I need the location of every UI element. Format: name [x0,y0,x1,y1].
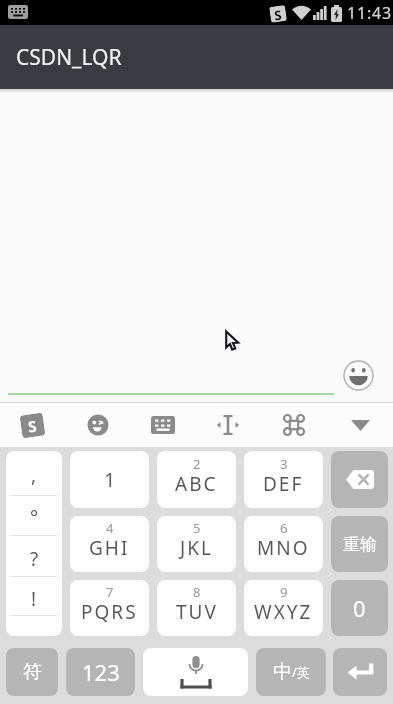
staticText: GHI [89,535,130,561]
button[interactable]: 8 [157,580,236,636]
staticText: S [273,5,283,22]
staticText: 3 [280,455,288,473]
staticText: CSDN_LQR [16,43,122,72]
button[interactable]: 1 [70,451,149,508]
staticText: 5 [193,519,201,537]
staticText: 123 [82,657,120,687]
staticText: PQRS [81,599,138,625]
staticText: /英 [292,663,310,681]
button[interactable]: 2 [157,451,236,508]
button[interactable]: ! [6,577,62,616]
staticText: 8 [193,583,201,601]
staticText: S [27,415,38,437]
staticText: , [31,462,37,488]
button[interactable] [261,403,327,447]
staticText: JKL [180,535,213,561]
button[interactable]: 123 [66,648,135,696]
button[interactable]: 0 [331,580,388,636]
staticText: 重输 [343,534,377,555]
button[interactable]: 7 [70,580,149,636]
button[interactable]: , [6,451,62,496]
button[interactable]: 4 [70,516,149,572]
staticText: 1 [104,466,116,493]
button[interactable]: 3 [244,451,323,508]
button[interactable] [195,403,261,447]
button[interactable]: , [6,451,62,636]
button[interactable]: 9 [244,580,323,636]
staticText: DEF [263,471,304,497]
button[interactable]: ? [6,536,62,577]
staticText: ! [31,586,37,612]
staticText: 中 [273,660,292,684]
staticText: MNO [257,535,310,561]
staticText: 11:43 [347,2,392,24]
staticText: 7 [106,583,114,601]
button[interactable] [143,648,248,696]
staticText: 0 [353,593,366,623]
button[interactable]: 中 [256,648,326,696]
button[interactable] [327,403,393,447]
staticText: ? [30,546,39,572]
button[interactable]: ° [6,496,62,536]
staticText: ° [30,505,39,531]
button[interactable]: 重输 [331,516,388,572]
button[interactable] [331,451,388,508]
staticText: ABC [175,471,218,497]
staticText: 2 [193,455,201,473]
button[interactable]: 5 [157,516,236,572]
staticText: 符 [23,660,42,684]
button[interactable]: 符 [6,648,58,696]
button[interactable]: S [0,403,65,447]
button[interactable]: 6 [244,516,323,572]
button[interactable] [130,403,195,447]
staticText: TUV [176,599,218,625]
staticText: WXYZ [254,599,313,625]
staticText: 4 [106,519,114,537]
button[interactable] [333,648,387,696]
button[interactable] [65,403,130,447]
staticText: 9 [280,583,288,601]
staticText: 6 [280,519,288,537]
